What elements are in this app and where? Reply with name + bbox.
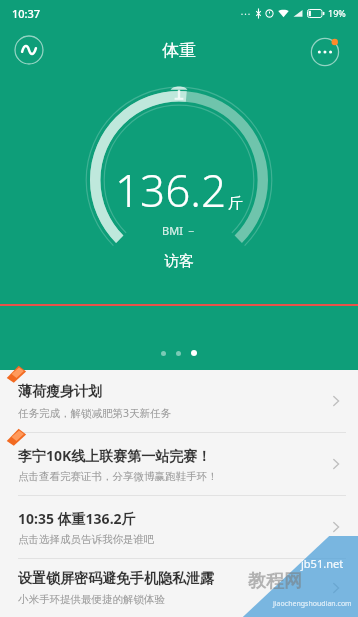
staticText: 点击选择成员告诉我你是谁吧 — [18, 533, 155, 546]
staticText: 体重 — [162, 40, 196, 61]
button[interactable]: 设置锁屏密码避免手机隐私泄露 — [0, 559, 358, 617]
staticText: 李宁10K线上联赛第一站完赛！ — [18, 446, 212, 465]
staticText: 薄荷瘦身计划 — [18, 383, 102, 401]
staticText: 教程网 — [248, 570, 302, 593]
staticText: 访客 — [164, 252, 194, 271]
staticText: 10:35 体重136.2斤 — [18, 509, 136, 528]
staticText: 136.2 — [115, 160, 227, 220]
staticText: jiaochengshoudian.com — [273, 599, 352, 609]
staticText: 小米手环提供最便捷的解锁体验 — [18, 593, 165, 606]
staticText: 点击查看完赛证书，分享微博赢跑鞋手环！ — [18, 470, 218, 483]
staticText: jb51.net — [301, 556, 344, 571]
staticText: 10:37 — [12, 6, 41, 21]
staticText: BMI － — [162, 223, 197, 238]
button[interactable]: 薄荷瘦身计划 — [0, 370, 358, 432]
button[interactable]: More options — [310, 33, 344, 67]
staticText: 斤 — [228, 194, 243, 213]
button[interactable]: 10:35 体重136.2斤 — [0, 496, 358, 558]
staticText: 19% — [328, 7, 346, 19]
button[interactable]: Activity — [14, 35, 44, 65]
staticText: 任务完成，解锁减肥第3天新任务 — [18, 406, 172, 420]
button[interactable]: 李宁10K线上联赛第一站完赛！ — [0, 433, 358, 495]
staticText: 设置锁屏密码避免手机隐私泄露 — [18, 570, 214, 588]
